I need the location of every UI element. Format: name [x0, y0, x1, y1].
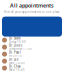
staticText: Dr. Patel	[9, 51, 21, 54]
staticText: Today 10:00	[9, 40, 26, 44]
button[interactable]: Dr. Jones	[0, 44, 64, 51]
staticText: Dr. Jones	[9, 44, 22, 47]
staticText: Dr. Chan	[9, 65, 21, 68]
button[interactable]: Dr. Patel	[0, 51, 64, 58]
button[interactable]: Dr. Smith	[0, 37, 64, 44]
staticText: Fri 09:15	[9, 54, 22, 58]
staticText: Dr. Smith	[9, 37, 21, 40]
staticText: Find all your appointments in one place	[4, 10, 60, 14]
staticText: Tomorrow 11:30	[9, 47, 32, 51]
staticText: Wed 16:45	[9, 68, 25, 72]
button[interactable]: Dr. Lee	[0, 58, 64, 65]
staticText: Mon 14:00	[9, 61, 25, 65]
button[interactable]: Dr. Chan	[0, 65, 64, 72]
staticText: Dr. Lee	[9, 58, 19, 61]
staticText: All appointments	[10, 2, 54, 9]
